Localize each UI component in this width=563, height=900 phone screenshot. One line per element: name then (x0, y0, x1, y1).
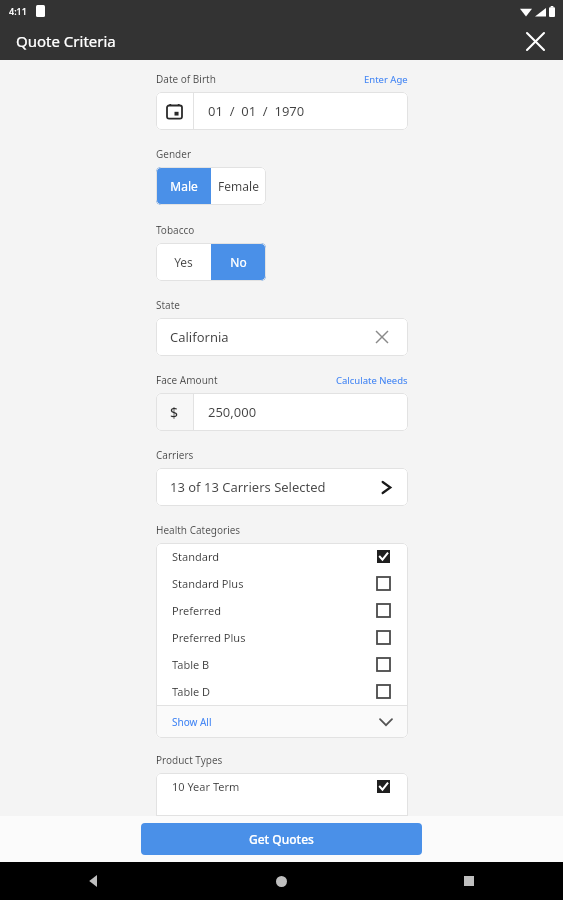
button[interactable]: 10 Year Term (156, 773, 408, 800)
staticText: Yes (174, 254, 193, 270)
staticText: Enter Age (364, 73, 408, 86)
staticText: California (170, 328, 370, 346)
button[interactable]: 13 of 13 Carriers Selected (156, 468, 408, 506)
staticText: Product Types (156, 753, 223, 767)
button[interactable]: Get Quotes (141, 823, 422, 855)
staticText: Health Categories (156, 523, 241, 537)
staticText: Standard (172, 549, 377, 564)
button[interactable]: Preferred Plus (156, 624, 408, 651)
staticText: Carriers (156, 448, 194, 462)
staticText: No (230, 254, 247, 270)
button[interactable]: Yes (156, 243, 211, 281)
button[interactable]: Close (517, 23, 553, 59)
staticText: Show All (172, 715, 380, 729)
staticText: 10 Year Term (172, 779, 377, 794)
staticText: Preferred (172, 603, 377, 618)
button[interactable]: Male (156, 167, 211, 205)
button[interactable]: Clear state (370, 325, 394, 349)
staticText: Calculate Needs (336, 374, 408, 387)
button[interactable]: Standard Plus (156, 570, 408, 597)
button[interactable]: Table B (156, 651, 408, 678)
button[interactable]: $ (156, 393, 408, 431)
staticText: State (156, 298, 180, 312)
staticText: Preferred Plus (172, 630, 377, 645)
button[interactable]: Home (187, 862, 375, 900)
button[interactable]: 01 / 01 / 1970 (156, 92, 408, 130)
staticText: $ (170, 403, 179, 422)
button[interactable]: Calculate Needs (336, 374, 408, 387)
staticText: Male (170, 178, 198, 194)
staticText: Table D (172, 684, 377, 699)
button[interactable]: Show All (156, 706, 408, 738)
button[interactable]: Table D (156, 678, 408, 705)
staticText: Date of Birth (156, 72, 364, 86)
button[interactable]: Enter Age (364, 73, 408, 86)
button[interactable]: Back (0, 862, 187, 900)
button[interactable]: Female (211, 167, 266, 205)
button[interactable]: No (211, 243, 266, 281)
staticText: Get Quotes (249, 831, 314, 847)
staticText: 01 / 01 / 1970 (208, 102, 305, 120)
button[interactable]: Recent apps (375, 862, 563, 900)
staticText: 250,000 (208, 403, 257, 421)
staticText: 13 of 13 Carriers Selected (170, 478, 381, 496)
staticText: Table B (172, 657, 377, 672)
button[interactable]: Standard (156, 543, 408, 570)
button[interactable]: Preferred (156, 597, 408, 624)
staticText: 4:11 (9, 5, 27, 17)
staticText: Female (218, 178, 259, 194)
button[interactable]: California (156, 318, 408, 356)
staticText: Standard Plus (172, 576, 377, 591)
staticText: Face Amount (156, 373, 336, 387)
staticText: Tobacco (156, 223, 195, 237)
staticText: Quote Criteria (16, 31, 116, 51)
staticText: Gender (156, 147, 192, 161)
